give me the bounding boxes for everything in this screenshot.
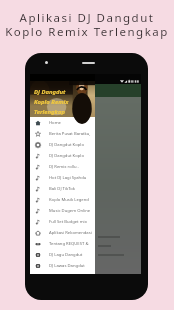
button[interactable]: Tentang REQUEST & LAPOR xyxy=(30,238,95,249)
button[interactable]: Hot DJ Lagi Syahdu Remix xyxy=(30,172,95,183)
staticText: DJ Dangdut xyxy=(34,88,66,96)
staticText: Full Set Budget mix xyxy=(49,219,87,225)
staticText: DJ Lagu Dangdut Pilihan Asli xyxy=(49,252,95,258)
button[interactable]: Full Set Budget mix xyxy=(30,216,95,227)
staticText: Berita Pusat Baratku, "Trending" xyxy=(49,131,95,137)
button[interactable]: DJ Lagu Dangdut Pilihan Asli xyxy=(30,249,95,260)
button[interactable]: DJ Remix rollu - Dangdut xyxy=(30,161,95,172)
button[interactable]: Music Dugem Online xyxy=(30,205,95,216)
staticText: Koplo Remix xyxy=(34,98,69,106)
staticText: Aplikasi Rekomendasi Lainnya xyxy=(49,230,95,236)
staticText: Aplikasi DJ Dangdut Koplo Remix Terlengk… xyxy=(0,10,174,39)
staticText: Music Dugem Online xyxy=(49,208,91,214)
staticText: Terlengkap xyxy=(34,108,65,116)
button[interactable]: Bali DJ TikTok Hoyonafisa xyxy=(30,183,95,194)
staticText: DJ Dangdut Koplo Remix xyxy=(49,142,95,148)
staticText: DJ Remix rollu - Dangdut xyxy=(49,164,95,170)
staticText: Hot DJ Lagi Syahdu Remix xyxy=(49,175,95,181)
staticText: DJ Lawas Dangdut Paling Asyik xyxy=(49,263,95,269)
button[interactable]: DJ Lawas Dangdut Paling Asyik xyxy=(30,260,95,271)
button[interactable]: DJ Dangdut Koplo Lamkad xyxy=(30,150,95,161)
button[interactable]: DJ Dangdut Koplo Remix xyxy=(30,139,95,150)
button[interactable]: Home xyxy=(30,117,95,128)
staticText: Tentang REQUEST & LAPOR xyxy=(49,241,95,247)
staticText: Home xyxy=(49,120,61,126)
staticText: DJ Dangdut Koplo Lamkad xyxy=(49,153,95,159)
button[interactable]: Berita Pusat Baratku, "Trending" xyxy=(30,128,95,139)
staticText: Koplo Musik Legend Remix xyxy=(49,197,95,203)
button[interactable]: Koplo Musik Legend Remix xyxy=(30,194,95,205)
button[interactable]: Aplikasi Rekomendasi Lainnya xyxy=(30,227,95,238)
staticText: Bali DJ TikTok Hoyonafisa xyxy=(49,186,95,192)
